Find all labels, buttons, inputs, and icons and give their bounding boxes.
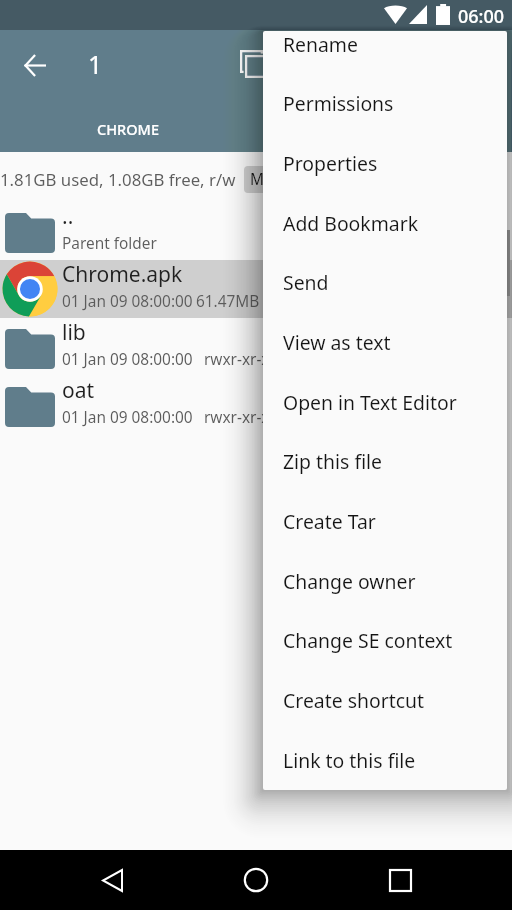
button[interactable]: Create shortcut xyxy=(263,670,507,730)
button[interactable]: Link to this file xyxy=(263,730,507,790)
button[interactable]: Create Tar xyxy=(263,491,507,551)
staticText: rwxr-xr-x xyxy=(204,349,270,370)
button[interactable]: .. xyxy=(0,202,512,260)
button[interactable]: Recents xyxy=(376,856,424,904)
staticText: Chrome.apk xyxy=(62,260,183,289)
staticText: MOUNT xyxy=(250,169,308,190)
staticText: 06:00 xyxy=(458,4,505,29)
button[interactable]: CHROME xyxy=(0,105,256,152)
staticText: .. xyxy=(62,202,74,231)
staticText: 01 Jan 09 08:00:00 xyxy=(62,407,193,428)
button[interactable]: Permissions xyxy=(263,73,507,133)
staticText: 1 xyxy=(88,47,103,81)
button[interactable]: Chrome.apk xyxy=(0,260,512,318)
staticText: oat xyxy=(62,376,95,405)
staticText: Parent folder xyxy=(62,233,157,254)
staticText: lib xyxy=(62,318,86,347)
staticText: 1.81GB used, 1.08GB free, r/w xyxy=(0,168,236,191)
staticText: Rename xyxy=(283,31,358,57)
button[interactable]: lib xyxy=(0,318,512,376)
button[interactable]: oat xyxy=(0,376,512,434)
staticText: Zip this file xyxy=(283,448,382,474)
button[interactable]: Open in Text Editor xyxy=(263,372,507,432)
staticText: CHROME xyxy=(97,119,159,139)
staticText: 01 Jan 09 08:00:00 xyxy=(62,291,193,312)
staticText: Change SE context xyxy=(283,627,453,653)
button[interactable]: Change owner xyxy=(263,551,507,611)
button[interactable]: Properties xyxy=(263,133,507,193)
button[interactable]: Back xyxy=(88,856,136,904)
staticText: Permissions xyxy=(283,90,394,116)
button[interactable]: Copy xyxy=(226,36,282,92)
button[interactable]: Back xyxy=(7,37,63,93)
staticText: 01 Jan 09 08:00:00 xyxy=(62,349,193,370)
staticText: Create shortcut xyxy=(283,687,424,713)
staticText: View as text xyxy=(283,329,391,355)
staticText: Properties xyxy=(283,150,378,176)
button[interactable]: Change SE context xyxy=(263,610,507,670)
button[interactable]: View as text xyxy=(263,312,507,372)
button[interactable]: MOUNT xyxy=(244,166,314,193)
button[interactable]: Send xyxy=(263,252,507,312)
button[interactable]: Zip this file xyxy=(263,431,507,491)
staticText: rwxr-xr-x xyxy=(204,407,270,428)
staticText: Change owner xyxy=(283,568,416,594)
button[interactable]: Add Bookmark xyxy=(263,193,507,253)
button[interactable]: Rename xyxy=(263,31,507,74)
staticText: Open in Text Editor xyxy=(283,389,457,415)
button[interactable]: Home xyxy=(232,856,280,904)
staticText: 61.47MB xyxy=(196,291,260,312)
staticText: Create Tar xyxy=(283,508,376,534)
staticText: Send xyxy=(283,269,329,295)
staticText: Link to this file xyxy=(283,747,416,773)
staticText: Add Bookmark xyxy=(283,210,419,236)
